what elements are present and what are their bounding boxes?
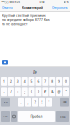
staticText: Комментарий [22,6,43,10]
button[interactable]: , [25,98,31,107]
staticText: Отмена [2,6,13,10]
staticText: ( [31,90,32,94]
staticText: •••○○ MTS RUS [1,0,19,4]
staticText: Отправить [52,6,68,10]
button[interactable]: 3 [15,77,21,86]
button[interactable]: Отправить [52,5,68,11]
button[interactable]: 6 [35,77,41,86]
button[interactable]: 1 [1,77,7,86]
staticText: ' [48,100,49,104]
button[interactable]: ₽ [42,87,48,96]
staticText: 1 [3,79,5,84]
staticText: 5 [31,79,33,84]
button[interactable]: 8 [49,77,55,86]
button[interactable]: Ввод [56,111,69,122]
staticText: ? [34,100,35,104]
staticText: Круглый светлый приемник на середине заб… [2,13,50,26]
staticText: . [20,100,21,104]
button[interactable]: / [8,87,14,96]
staticText: ; [24,90,25,94]
staticText: 2 [10,79,12,84]
staticText: 8 [51,79,53,84]
button[interactable]: Отмена [2,5,13,11]
button[interactable]: ( [28,87,35,96]
button[interactable]: 0 [63,77,69,86]
staticText: 3 [17,79,19,84]
button[interactable]: Next keyboard [11,111,17,122]
button[interactable]: 4 [22,77,28,86]
staticText: ₽ [44,90,46,94]
staticText: & [51,90,53,94]
staticText: 0 [65,79,67,84]
staticText: 6 [37,79,39,84]
staticText: Ввод [60,115,65,118]
button[interactable]: Attach photo [2,60,8,65]
button[interactable]: 7 [42,77,48,86]
button[interactable]: ⌫ [60,98,69,107]
staticText: 9 [58,79,60,84]
button[interactable]: 9 [56,77,62,86]
button[interactable]: 5 [28,77,35,86]
staticText: 41 % [63,0,68,4]
staticText: / [10,90,11,94]
staticText: @ [58,90,61,94]
button[interactable]: . [18,98,24,107]
button[interactable]: АБВ [1,111,10,122]
button[interactable]: - [1,87,7,96]
button[interactable]: 2 [8,77,14,86]
staticText: ⌫ [63,101,66,104]
staticText: Да [33,70,37,74]
staticText: Пробел [30,114,42,119]
button[interactable]: : [15,87,21,96]
staticText: #+= [3,101,7,104]
staticText: 17:30 [39,0,44,4]
button[interactable]: Пробел [18,111,55,122]
button[interactable]: " [63,87,69,96]
button[interactable]: ! [39,98,45,107]
staticText: 4 [24,79,26,84]
button[interactable]: ' [46,98,52,107]
staticText: 7 [44,79,46,84]
button[interactable]: ? [32,98,38,107]
button[interactable]: & [49,87,55,96]
staticText: ) [38,90,39,94]
staticText: : [17,90,18,94]
button[interactable]: ; [22,87,28,96]
staticText: АБВ [3,115,8,118]
button[interactable]: #+= [1,98,10,107]
button[interactable]: @ [56,87,62,96]
button[interactable]: ) [35,87,41,96]
